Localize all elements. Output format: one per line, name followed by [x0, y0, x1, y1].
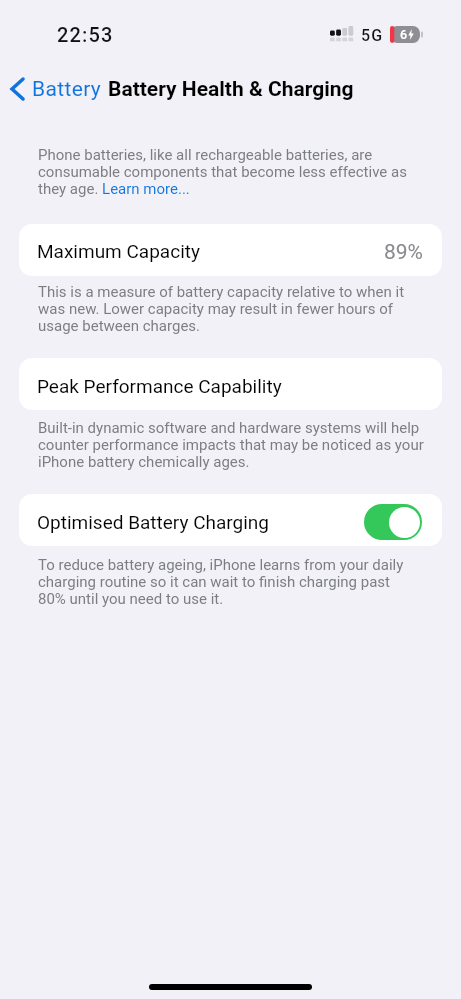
- button[interactable]: Optimised Battery Charging: [364, 504, 422, 540]
- button[interactable]: Battery: [0, 74, 107, 105]
- staticText: 89%: [384, 240, 423, 265]
- button[interactable]: Optimised Battery Charging: [19, 494, 442, 546]
- staticText: This is a measure of battery capacity re…: [38, 284, 405, 335]
- staticText: Built-in dynamic software and hardware s…: [38, 420, 424, 471]
- staticText: 6: [400, 27, 408, 42]
- staticText: Phone batteries, like all rechargeable b…: [38, 147, 407, 198]
- staticText: 22:53: [57, 23, 114, 46]
- button[interactable]: Learn more about battery health: [99, 179, 188, 197]
- staticText: Peak Performance Capability: [37, 375, 282, 397]
- staticText: Battery Health & Charging: [108, 77, 354, 102]
- staticText: Battery: [32, 77, 102, 102]
- other: Cellular signal: [330, 26, 353, 42]
- staticText: 5G: [361, 26, 384, 45]
- button[interactable]: Maximum Capacity: [19, 224, 442, 276]
- staticText: To reduce battery ageing, iPhone learns …: [38, 557, 404, 608]
- staticText: Maximum Capacity: [37, 240, 200, 262]
- button[interactable]: Peak Performance Capability: [19, 358, 442, 410]
- staticText: Optimised Battery Charging: [37, 511, 270, 533]
